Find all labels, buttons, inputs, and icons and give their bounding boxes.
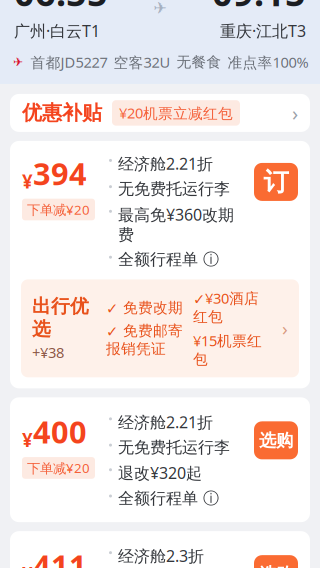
staticText: ✈ — [153, 0, 166, 17]
staticText: 全额行程单 ⓘ — [118, 250, 219, 269]
staticText: 下单减¥20 — [27, 201, 90, 218]
staticText: ¥ — [22, 561, 33, 568]
staticText: › — [292, 100, 298, 126]
staticText: 广州·白云T1 — [14, 20, 100, 41]
staticText: 394 — [33, 153, 87, 194]
staticText: 经济舱2.21折 — [118, 411, 213, 433]
staticText: 重庆·江北T3 — [220, 20, 306, 41]
staticText: 经济舱2.3折 — [118, 545, 204, 566]
button[interactable]: ¥ — [10, 397, 310, 522]
staticText: 出行优选 — [32, 295, 89, 341]
staticText: 经济舱2.21折 — [118, 153, 213, 174]
staticText: ¥15机票红包 — [193, 331, 262, 368]
staticText: 选购 — [259, 563, 293, 568]
staticText: 准点率100% — [227, 52, 308, 72]
staticText: 无免费托运行李 — [118, 179, 230, 199]
staticText: 空客32U — [113, 52, 170, 72]
staticText: 下单减¥20 — [27, 459, 90, 477]
staticText: ✈ — [13, 55, 23, 69]
staticText: 订 — [263, 166, 288, 197]
staticText: 首都JD5227 — [30, 52, 107, 72]
staticText: ✓¥30酒店红包 — [193, 288, 259, 326]
staticText: 最高免¥360改期费 — [118, 204, 234, 245]
staticText: › — [282, 316, 288, 341]
button[interactable]: ¥ — [10, 531, 310, 568]
staticText: 全额行程单 ⓘ — [118, 488, 219, 508]
button[interactable]: 订 — [254, 163, 298, 201]
staticText: ✓ 免费邮寄报销凭证 — [106, 322, 183, 358]
staticText: ¥ — [22, 427, 33, 452]
staticText: 退改¥320起 — [118, 462, 202, 483]
staticText: 无餐食 — [176, 53, 221, 71]
staticText: ¥20机票立减红包 — [119, 103, 233, 123]
staticText: ¥ — [22, 169, 33, 194]
button[interactable]: 出行优选 — [21, 279, 299, 377]
staticText: 09:15 — [212, 0, 306, 16]
staticText: 400 — [33, 411, 87, 452]
staticText: 优惠补贴 — [22, 101, 102, 125]
staticText: 无免费托运行李 — [118, 438, 230, 457]
staticText: ✓ 免费改期 — [106, 299, 183, 317]
staticText: 411 — [33, 545, 87, 568]
button[interactable]: 优惠补贴 — [10, 94, 310, 132]
staticText: 06:55 — [14, 0, 108, 16]
staticText: +¥38 — [32, 343, 64, 362]
staticText: 选购 — [259, 430, 293, 451]
